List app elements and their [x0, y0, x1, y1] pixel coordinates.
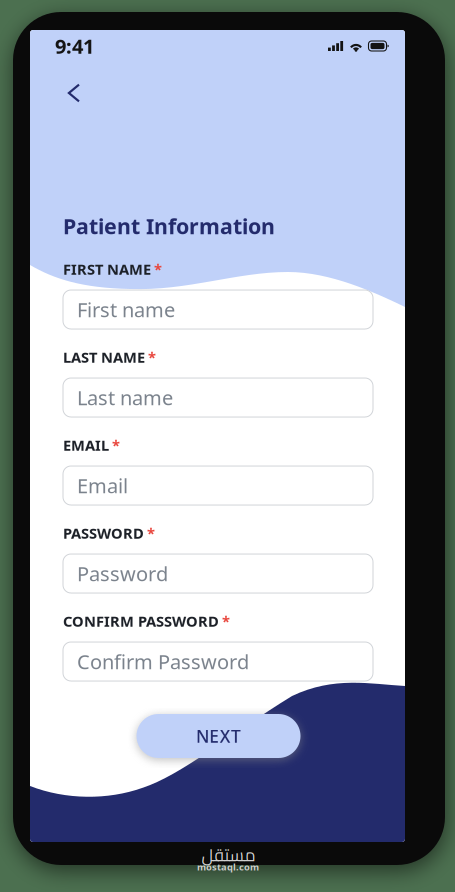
- button[interactable]: NEXT: [136, 714, 300, 758]
- button[interactable]: Email: [63, 466, 373, 505]
- staticText: *: [148, 347, 156, 367]
- staticText: Password: [77, 560, 168, 587]
- staticText: mostaql.com: [197, 861, 259, 873]
- staticText: First name: [77, 296, 175, 323]
- staticText: EMAIL: [63, 435, 109, 455]
- staticText: Last name: [77, 384, 173, 411]
- staticText: Patient Information: [63, 212, 275, 240]
- staticText: *: [154, 259, 162, 279]
- button[interactable]: Password: [63, 554, 373, 593]
- staticText: *: [112, 435, 120, 455]
- staticText: *: [147, 523, 155, 543]
- button[interactable]: Last name: [63, 378, 373, 417]
- staticText: Email: [77, 472, 128, 499]
- staticText: CONFIRM PASSWORD: [63, 611, 219, 631]
- staticText: FIRST NAME: [63, 259, 151, 279]
- staticText: Confirm Password: [77, 648, 249, 675]
- button[interactable]: First name: [63, 290, 373, 329]
- staticText: مستقل: [201, 839, 255, 871]
- staticText: 9:41: [55, 33, 94, 59]
- staticText: PASSWORD: [63, 523, 144, 543]
- button[interactable]: Confirm Password: [63, 642, 373, 681]
- staticText: *: [222, 611, 230, 631]
- staticText: LAST NAME: [63, 347, 145, 367]
- staticText: NEXT: [196, 724, 241, 747]
- button[interactable]: Back: [54, 70, 93, 115]
